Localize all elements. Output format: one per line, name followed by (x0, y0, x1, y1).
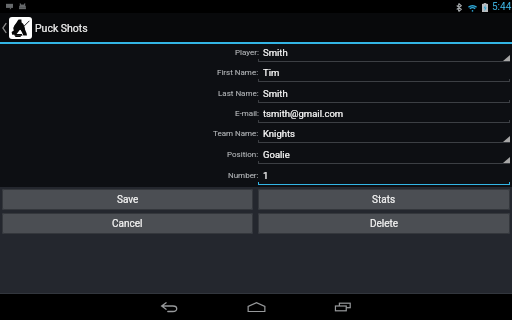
button[interactable]: Team Name: Knights (263, 124, 512, 143)
staticText: Puck Shots (35, 22, 88, 34)
button[interactable]: Cancel (2, 213, 253, 234)
staticText: Goalie (263, 149, 290, 160)
button[interactable]: Save (2, 189, 253, 210)
button[interactable]: Player: Smith (263, 43, 512, 62)
staticText: Tim (263, 67, 280, 78)
button[interactable]: E-mail: tsmith@gmail.com (263, 104, 512, 123)
staticText: Smith (263, 88, 288, 99)
staticText: 5:44 (492, 1, 512, 13)
button[interactable]: Stats (258, 189, 510, 210)
button[interactable]: Delete (258, 213, 510, 234)
staticText: Delete (370, 218, 399, 230)
button[interactable]: Last Name: Smith (263, 84, 512, 103)
staticText: 1 (263, 170, 269, 181)
button[interactable]: Position: Goalie (263, 145, 512, 164)
button[interactable]: Home (228, 294, 284, 320)
staticText: Position: (227, 150, 259, 159)
staticText: Number: (228, 171, 259, 180)
button[interactable]: Recent apps (315, 294, 371, 320)
staticText: Stats (372, 194, 396, 206)
button[interactable]: Navigate up (0, 17, 32, 39)
staticText: tsmith@gmail.com (263, 108, 344, 119)
staticText: Player: (235, 48, 259, 57)
staticText: E-mail: (235, 109, 259, 118)
staticText: Save (117, 194, 139, 206)
staticText: Smith (263, 47, 288, 58)
button[interactable]: Back (141, 294, 197, 320)
staticText: First Name: (217, 68, 259, 77)
button[interactable]: First Name: Tim (263, 63, 512, 82)
staticText: Team Name: (213, 129, 259, 138)
button[interactable]: Number: 1 (263, 166, 512, 185)
staticText: Cancel (112, 218, 143, 230)
staticText: Last Name: (218, 89, 259, 98)
staticText: Knights (263, 128, 295, 139)
